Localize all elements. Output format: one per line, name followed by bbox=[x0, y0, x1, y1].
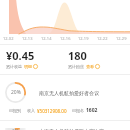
staticText: 1602 bbox=[86, 107, 98, 114]
button[interactable]: 180 bbox=[68, 48, 130, 69]
staticText: 上海无人机航拍摄影大赛决赛 bbox=[39, 128, 104, 130]
staticText: 明细 bbox=[24, 64, 32, 69]
staticText: ¥0.45 bbox=[6, 48, 35, 63]
staticText: 12-22 bbox=[97, 36, 108, 41]
staticText: 收入 bbox=[27, 108, 35, 113]
staticText: ¥50312908.00 bbox=[37, 108, 67, 114]
staticText: 12-29 bbox=[116, 36, 127, 41]
other: Help bbox=[95, 64, 100, 69]
staticText: 南京无人机航拍爱好者会议 bbox=[39, 90, 99, 96]
staticText: 12-16 bbox=[60, 36, 71, 41]
button[interactable]: ¥0.45 bbox=[6, 48, 68, 69]
staticText: 已报名 bbox=[72, 108, 84, 113]
staticText: 12-02 bbox=[3, 36, 14, 41]
staticText: 12-14 bbox=[41, 36, 52, 41]
staticText: 累计粉丝 bbox=[68, 64, 84, 69]
staticText: 6% bbox=[12, 128, 20, 130]
staticText: 查看 bbox=[86, 64, 94, 69]
staticText: 12-13 bbox=[22, 36, 33, 41]
staticText: 20% bbox=[11, 89, 21, 96]
button[interactable]: 6% bbox=[0, 121, 130, 130]
button[interactable]: 20% bbox=[0, 75, 130, 121]
staticText: 已报到 bbox=[9, 108, 21, 113]
staticText: 累计收益 bbox=[6, 64, 22, 69]
other: Help bbox=[33, 64, 38, 69]
staticText: 12-19 bbox=[78, 36, 89, 41]
staticText: 180 bbox=[68, 48, 87, 63]
